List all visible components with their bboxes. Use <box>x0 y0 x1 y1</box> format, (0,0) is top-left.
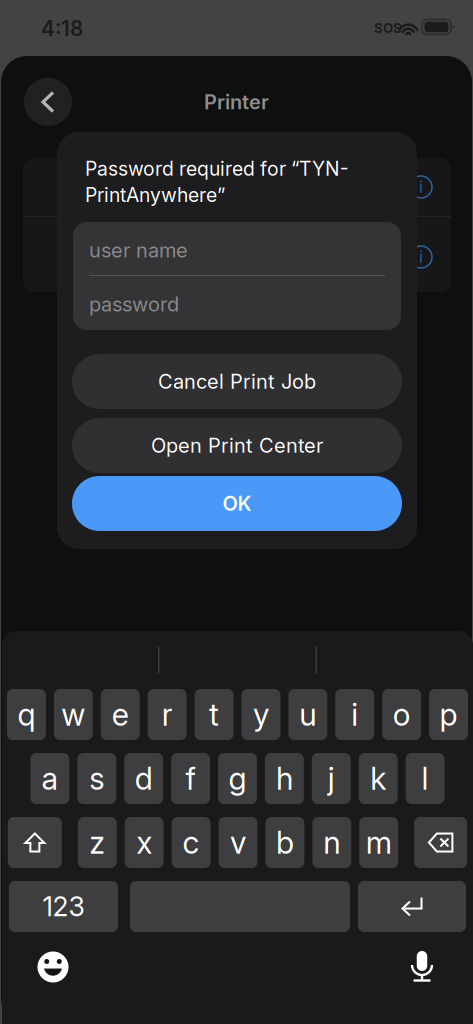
staticText: p <box>439 696 457 733</box>
staticText: a <box>41 760 58 797</box>
button[interactable]: x <box>125 817 164 868</box>
staticText: y <box>253 696 269 733</box>
staticText: user name <box>89 238 188 262</box>
button[interactable]: Back <box>24 78 72 126</box>
staticText: Open Print Center <box>151 433 323 458</box>
staticText: c <box>183 824 200 861</box>
button[interactable]: w <box>54 689 93 740</box>
staticText: r <box>162 696 173 733</box>
button[interactable]: 123 <box>9 881 118 932</box>
button[interactable]: q <box>7 689 46 740</box>
button[interactable]: j <box>312 753 351 804</box>
staticText: n <box>323 824 340 861</box>
button[interactable]: Emoji keyboard <box>31 945 75 989</box>
button[interactable]: y <box>241 689 280 740</box>
staticText: f <box>186 760 196 797</box>
staticText: l <box>422 760 429 797</box>
staticText: password <box>89 292 179 316</box>
button[interactable]: i <box>335 689 374 740</box>
staticText: PrintAnywhere” <box>85 183 225 207</box>
staticText: g <box>228 760 246 797</box>
button[interactable]: Shift <box>8 817 62 868</box>
button[interactable]: u <box>288 689 327 740</box>
staticText: 4:18 <box>41 16 83 41</box>
staticText: Printer <box>204 90 269 114</box>
button[interactable]: c <box>172 817 210 868</box>
button[interactable]: e <box>101 689 140 740</box>
button[interactable]: Delete <box>414 817 467 868</box>
staticText: v <box>230 824 246 861</box>
button[interactable]: Return <box>358 881 466 932</box>
staticText: 123 <box>42 890 84 923</box>
button[interactable]: f <box>171 753 210 804</box>
staticText: s <box>89 760 104 797</box>
staticText: SOS <box>374 20 402 36</box>
button[interactable]: t <box>195 689 233 740</box>
button[interactable]: k <box>359 753 398 804</box>
staticText: u <box>299 696 316 733</box>
button[interactable]: h <box>265 753 304 804</box>
button[interactable]: o <box>382 689 421 740</box>
staticText: i <box>419 177 423 197</box>
staticText: d <box>135 760 153 797</box>
staticText: j <box>328 760 335 797</box>
button[interactable]: OK <box>72 476 402 531</box>
button[interactable]: m <box>359 817 398 868</box>
staticText: z <box>89 824 105 861</box>
staticText: OK <box>222 491 251 516</box>
staticText: Cancel Print Job <box>158 369 316 394</box>
staticText: Password required for “TYN- <box>85 157 349 180</box>
staticText: h <box>276 760 293 797</box>
staticText: x <box>136 824 152 861</box>
staticText: m <box>366 824 392 861</box>
button[interactable]: l <box>406 753 444 804</box>
button[interactable]: d <box>124 753 163 804</box>
button[interactable]: g <box>218 753 257 804</box>
button[interactable]: a <box>30 753 69 804</box>
button[interactable]: Dictate <box>400 945 444 989</box>
staticText: i <box>419 247 423 267</box>
button[interactable]: p <box>429 689 468 740</box>
staticText: o <box>393 696 411 733</box>
button[interactable]: s <box>77 753 116 804</box>
button[interactable]: v <box>218 817 257 868</box>
button[interactable]: r <box>148 689 187 740</box>
staticText: w <box>61 696 85 733</box>
staticText: t <box>209 696 219 733</box>
button[interactable]: b <box>265 817 304 868</box>
button[interactable]: n <box>312 817 351 868</box>
staticText: q <box>17 696 35 733</box>
staticText: i <box>351 696 358 733</box>
staticText: k <box>370 760 386 797</box>
staticText: e <box>112 696 129 733</box>
staticText: b <box>276 824 294 861</box>
button[interactable]: z <box>78 817 117 868</box>
button[interactable]: Cancel Print Job <box>72 354 402 409</box>
button[interactable]: Open Print Center <box>72 418 402 473</box>
